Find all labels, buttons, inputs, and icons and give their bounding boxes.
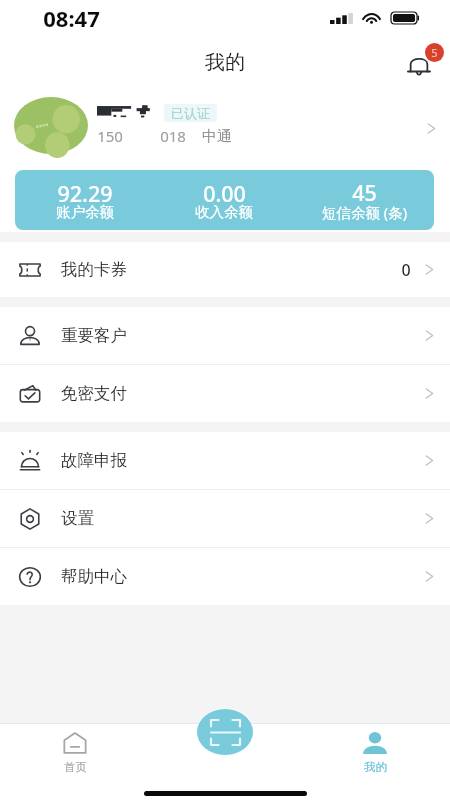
staticText: 0.00 (203, 179, 246, 208)
staticText: 我的卡券 (61, 259, 127, 280)
staticText: 08:47 (43, 3, 100, 33)
button[interactable]: 首页 (0, 723, 150, 774)
staticText: 短信余额 (条) (322, 202, 407, 222)
staticText: 已认证 (171, 105, 210, 121)
staticText: 92.29 (57, 179, 113, 208)
button[interactable]: 故障申报 (0, 432, 450, 489)
staticText: 收入余额 (195, 203, 253, 221)
button[interactable]: Scan (193, 705, 257, 759)
staticText: 0 (401, 259, 411, 281)
staticText: 设置 (61, 508, 94, 529)
staticText: 我的 (205, 50, 245, 75)
staticText: 45 (352, 178, 377, 207)
staticText: 免密支付 (61, 383, 127, 404)
button[interactable]: 免密支付 (0, 365, 450, 422)
staticText: 故障申报 (61, 450, 127, 471)
button[interactable]: 重要客户 (0, 307, 450, 364)
button[interactable]: Notifications (399, 40, 443, 84)
button[interactable]: 92.29 (15, 170, 434, 230)
staticText: 首页 (64, 760, 87, 774)
button[interactable]: 我的 (300, 723, 450, 774)
staticText: 018 (160, 126, 186, 146)
button[interactable]: 帮助中心 (0, 548, 450, 605)
staticText: 重要客户 (61, 325, 127, 346)
staticText: 中通 (202, 127, 232, 146)
staticText: 账户余额 (56, 203, 114, 221)
staticText: 150 (97, 126, 123, 146)
staticText: 5 (431, 45, 438, 60)
button[interactable]: 设置 (0, 490, 450, 547)
staticText: 我的 (364, 760, 387, 774)
staticText: 帮助中心 (61, 566, 127, 587)
button[interactable]: 我的卡券 (0, 242, 450, 297)
button[interactable]: 已认证 (0, 86, 450, 170)
